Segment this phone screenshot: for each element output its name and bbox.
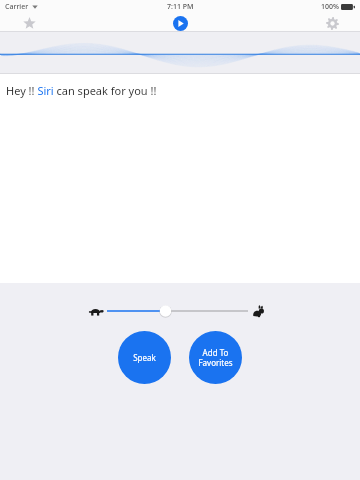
button[interactable]: Play (171, 14, 189, 32)
button[interactable]: Settings (323, 14, 341, 32)
staticText: Speak (133, 352, 156, 363)
button[interactable]: Speak (118, 331, 171, 384)
staticText: 100% (321, 2, 339, 12)
staticText: Hey !! Siri can speak for you !! (6, 83, 157, 98)
button[interactable]: Favorites (20, 14, 38, 32)
staticText: Carrier (5, 2, 29, 12)
button[interactable]: Add To Favorites (189, 331, 242, 384)
button[interactable]: Speech rate (107, 301, 248, 321)
staticText: Add To Favorites (198, 347, 233, 368)
staticText: 7:11 PM (167, 2, 194, 12)
